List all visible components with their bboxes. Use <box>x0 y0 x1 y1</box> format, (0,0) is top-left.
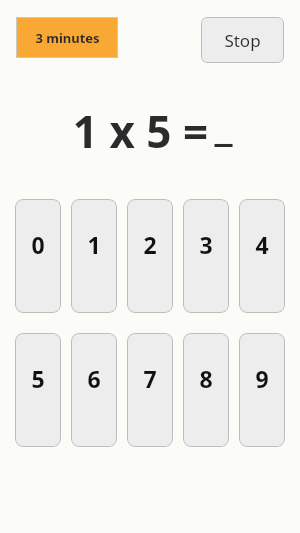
button[interactable]: 6 <box>71 333 117 447</box>
staticText: 3 <box>199 229 213 260</box>
button[interactable]: 9 <box>239 333 285 447</box>
staticText: 4 <box>255 229 269 260</box>
button[interactable]: Stop <box>201 17 284 63</box>
staticText: 8 <box>199 363 213 394</box>
staticText: 7 <box>143 363 157 394</box>
button[interactable]: 4 <box>239 199 285 313</box>
staticText: 1 x 5 = <box>67 101 214 161</box>
staticText: Stop <box>224 29 261 52</box>
button[interactable]: 1 <box>71 199 117 313</box>
staticText: 6 <box>87 363 101 394</box>
staticText: 0 <box>31 229 45 260</box>
button[interactable]: 3 minutes <box>16 17 118 58</box>
staticText: 3 minutes <box>35 29 100 47</box>
staticText: 2 <box>143 229 157 260</box>
button[interactable]: 7 <box>127 333 173 447</box>
staticText: 5 <box>31 363 45 394</box>
staticText: 9 <box>255 363 269 394</box>
staticText: _ <box>214 93 233 153</box>
button[interactable]: 3 <box>183 199 229 313</box>
button[interactable]: 0 <box>15 199 61 313</box>
staticText: 1 <box>87 229 101 260</box>
button[interactable]: 2 <box>127 199 173 313</box>
button[interactable]: 8 <box>183 333 229 447</box>
button[interactable]: 5 <box>15 333 61 447</box>
